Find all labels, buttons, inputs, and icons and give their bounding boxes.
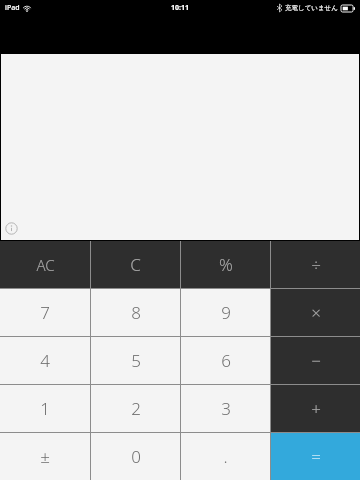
- button[interactable]: Info: [5, 222, 18, 235]
- button[interactable]: ÷: [271, 241, 360, 288]
- staticText: 充電していません: [285, 4, 338, 12]
- staticText: 6: [221, 349, 231, 372]
- button[interactable]: C: [91, 241, 180, 288]
- staticText: 4: [40, 349, 50, 372]
- button[interactable]: 5: [91, 337, 180, 384]
- button[interactable]: 2: [91, 385, 180, 432]
- staticText: +: [311, 397, 321, 420]
- button[interactable]: 9: [181, 289, 270, 336]
- staticText: 0: [131, 445, 141, 468]
- staticText: 1: [40, 397, 50, 420]
- staticText: ±: [40, 445, 50, 468]
- staticText: =: [311, 445, 321, 468]
- staticText: 7: [40, 301, 50, 324]
- staticText: 8: [131, 301, 141, 324]
- button[interactable]: 8: [91, 289, 180, 336]
- button[interactable]: 0: [91, 433, 180, 480]
- staticText: ×: [311, 301, 321, 324]
- staticText: %: [219, 253, 233, 276]
- button[interactable]: %: [181, 241, 270, 288]
- staticText: −: [311, 349, 321, 372]
- button[interactable]: ×: [271, 289, 360, 336]
- button[interactable]: −: [271, 337, 360, 384]
- button[interactable]: 1: [0, 385, 90, 432]
- button[interactable]: ±: [0, 433, 90, 480]
- button[interactable]: 4: [0, 337, 90, 384]
- button[interactable]: AC: [0, 241, 90, 288]
- button[interactable]: =: [271, 433, 360, 480]
- staticText: AC: [36, 255, 55, 275]
- staticText: 9: [221, 301, 231, 324]
- staticText: 2: [131, 397, 141, 420]
- button[interactable]: +: [271, 385, 360, 432]
- staticText: 10:11: [171, 3, 189, 13]
- staticText: 3: [221, 397, 231, 420]
- button[interactable]: 7: [0, 289, 90, 336]
- staticText: 5: [131, 349, 141, 372]
- staticText: C: [130, 253, 141, 276]
- button[interactable]: 6: [181, 337, 270, 384]
- staticText: ÷: [311, 253, 321, 276]
- staticText: .: [223, 445, 228, 468]
- staticText: iPad: [5, 3, 20, 13]
- button[interactable]: 3: [181, 385, 270, 432]
